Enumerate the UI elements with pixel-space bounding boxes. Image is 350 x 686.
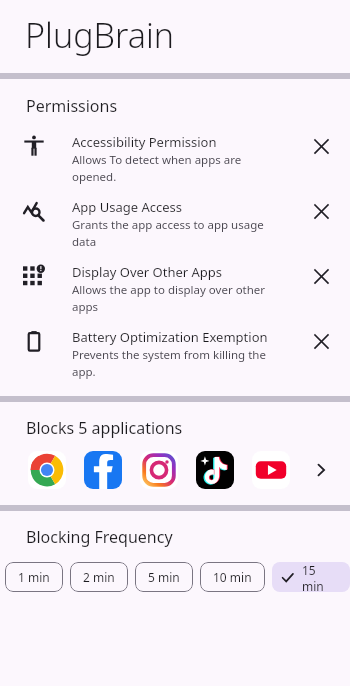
button[interactable]: App Usage Access bbox=[0, 190, 350, 255]
button[interactable]: Accessibility Permission bbox=[0, 125, 350, 190]
button[interactable]: 15 min bbox=[272, 562, 350, 592]
button[interactable]: 10 min bbox=[200, 562, 265, 592]
staticText: 10 min bbox=[213, 569, 252, 585]
staticText: Permissions bbox=[26, 95, 118, 117]
staticText: Allows the app to display over other app… bbox=[72, 282, 266, 314]
button[interactable]: Facebook bbox=[78, 445, 128, 495]
button[interactable]: Instagram bbox=[134, 445, 184, 495]
staticText: Grants the app access to app usage data bbox=[72, 217, 264, 249]
staticText: 2 min bbox=[83, 569, 115, 585]
staticText: Blocks 5 applications bbox=[26, 417, 183, 439]
button[interactable]: YouTube bbox=[246, 445, 296, 495]
staticText: Battery Optimization Exemption bbox=[72, 328, 268, 346]
staticText: App Usage Access bbox=[72, 198, 182, 216]
staticText: PlugBrain bbox=[25, 12, 175, 58]
button[interactable]: See all blocked apps bbox=[306, 455, 336, 485]
button[interactable]: Dismiss Display Over Other Apps bbox=[308, 263, 334, 289]
staticText: 5 min bbox=[148, 569, 180, 585]
staticText: Blocking Frequency bbox=[26, 526, 173, 548]
button[interactable]: 5 min bbox=[135, 562, 193, 592]
button[interactable]: TikTok bbox=[190, 445, 240, 495]
button[interactable]: 1 min bbox=[5, 562, 63, 592]
staticText: Accessibility Permission bbox=[72, 133, 217, 151]
button[interactable]: Dismiss App Usage Access bbox=[308, 198, 334, 224]
button[interactable]: 2 min bbox=[70, 562, 128, 592]
staticText: 1 min bbox=[18, 569, 50, 585]
button[interactable]: Display Over Other Apps bbox=[0, 255, 350, 320]
staticText: Display Over Other Apps bbox=[72, 263, 223, 281]
button[interactable]: Chrome bbox=[22, 445, 72, 495]
staticText: Allows To detect when apps are opened. bbox=[72, 152, 242, 184]
button[interactable]: Dismiss Battery Optimization Exemption bbox=[308, 328, 334, 354]
button[interactable]: Dismiss Accessibility Permission bbox=[308, 133, 334, 159]
staticText: Prevents the system from killing the app… bbox=[72, 347, 266, 379]
staticText: 15 min bbox=[302, 562, 337, 592]
button[interactable]: Battery Optimization Exemption bbox=[0, 320, 350, 385]
